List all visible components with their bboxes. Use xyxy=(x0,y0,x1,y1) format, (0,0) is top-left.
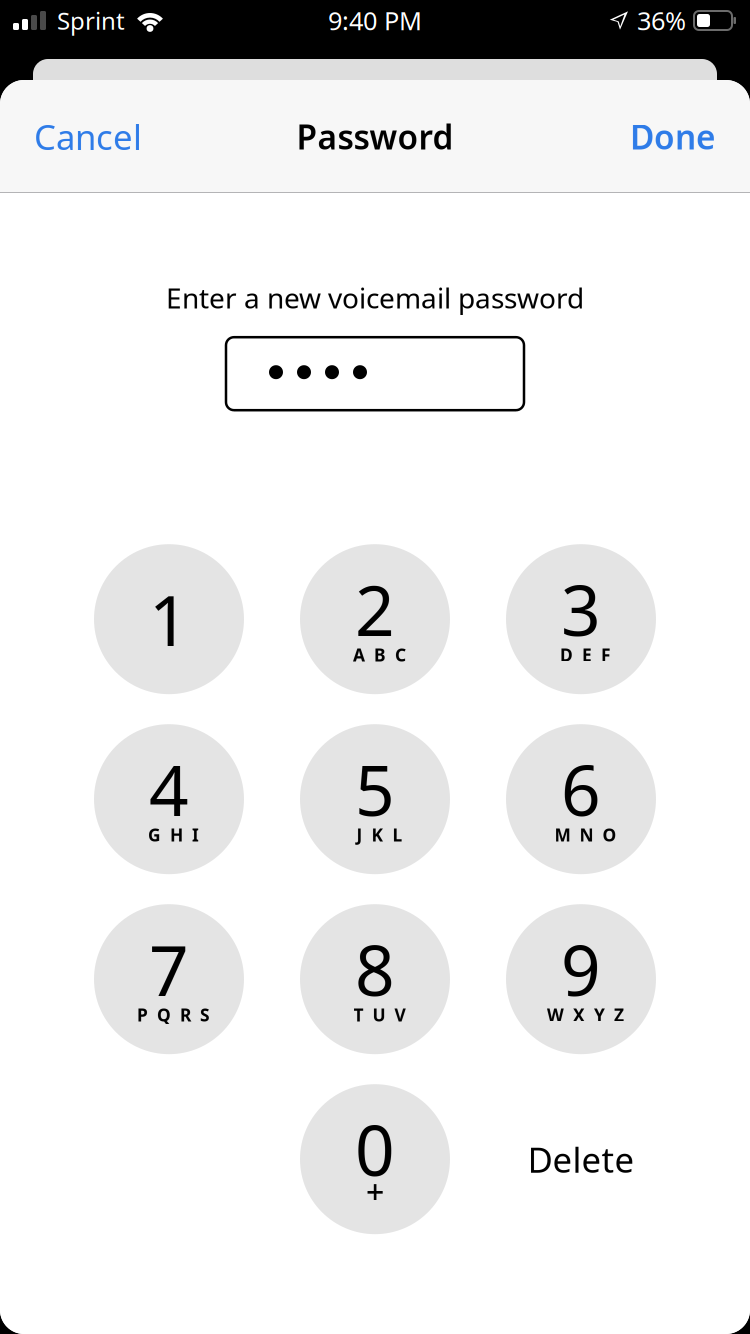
staticText: 2 xyxy=(355,563,395,655)
button[interactable]: 1 xyxy=(94,544,244,694)
staticText: 3 xyxy=(561,563,601,655)
staticText: Delete xyxy=(527,1136,634,1182)
button[interactable]: 7 xyxy=(94,904,244,1054)
staticText: Sprint xyxy=(57,5,125,36)
staticText: MNO xyxy=(554,823,616,846)
staticText: 1 xyxy=(149,573,189,665)
staticText: ABC xyxy=(353,643,406,666)
staticText: TUV xyxy=(353,1003,405,1026)
button[interactable]: 4 xyxy=(94,724,244,874)
staticText: + xyxy=(366,1170,384,1213)
staticText: WXYZ xyxy=(547,1003,624,1026)
button[interactable]: 6 xyxy=(506,724,656,874)
button[interactable]: 0 xyxy=(300,1084,450,1234)
staticText: Enter a new voicemail password xyxy=(166,279,584,316)
staticText: 9 xyxy=(561,923,601,1015)
button[interactable]: Delete xyxy=(506,1084,656,1234)
staticText: Password xyxy=(296,114,453,159)
button[interactable]: 2 xyxy=(300,544,450,694)
button[interactable]: 9 xyxy=(506,904,656,1054)
staticText: PQRS xyxy=(137,1003,210,1026)
staticText: Cancel xyxy=(34,113,142,159)
button[interactable]: 8 xyxy=(300,904,450,1054)
staticText: DEF xyxy=(560,643,611,666)
button[interactable]: 5 xyxy=(300,724,450,874)
staticText: 0 xyxy=(355,1103,395,1195)
button[interactable]: Done xyxy=(630,114,716,159)
staticText: 9:40 PM xyxy=(328,4,422,37)
staticText: JKL xyxy=(356,823,402,846)
button[interactable]: 3 xyxy=(506,544,656,694)
staticText: 7 xyxy=(149,923,189,1015)
staticText: 8 xyxy=(355,923,395,1015)
staticText: 36% xyxy=(637,4,686,37)
button[interactable]: Cancel xyxy=(34,113,142,159)
staticText: 5 xyxy=(355,743,395,835)
staticText: 4 xyxy=(149,743,189,835)
staticText: Done xyxy=(630,114,716,159)
staticText: GHI xyxy=(148,823,199,846)
staticText: 6 xyxy=(561,743,601,835)
